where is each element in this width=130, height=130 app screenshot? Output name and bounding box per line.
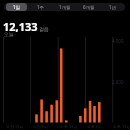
staticText: 4,000 bbox=[112, 38, 124, 44]
staticText: 오전 6시 bbox=[33, 124, 49, 129]
staticText: 오후 12시 bbox=[60, 124, 78, 129]
staticText: 오늘 bbox=[4, 31, 14, 37]
staticText: 1개월 bbox=[59, 4, 71, 10]
staticText: 오전 12시 bbox=[6, 124, 24, 129]
staticText: 오후 6시 bbox=[87, 124, 103, 129]
staticText: 6개월 bbox=[83, 4, 95, 10]
staticText: 2,000 bbox=[112, 79, 124, 85]
staticText: 12,133 bbox=[3, 19, 38, 34]
button[interactable]: 1년 bbox=[103, 3, 123, 11]
button[interactable]: 1주 bbox=[31, 3, 51, 11]
staticText: 오후 11시 bbox=[113, 124, 130, 129]
button[interactable]: 1개월 bbox=[55, 3, 75, 11]
button[interactable]: 6개월 bbox=[79, 3, 99, 11]
staticText: 1주 bbox=[37, 4, 45, 10]
staticText: 1일 bbox=[13, 4, 21, 10]
staticText: 걸음 bbox=[39, 26, 49, 32]
button[interactable]: 1일 bbox=[6, 3, 27, 11]
staticText: 1년 bbox=[109, 4, 117, 10]
